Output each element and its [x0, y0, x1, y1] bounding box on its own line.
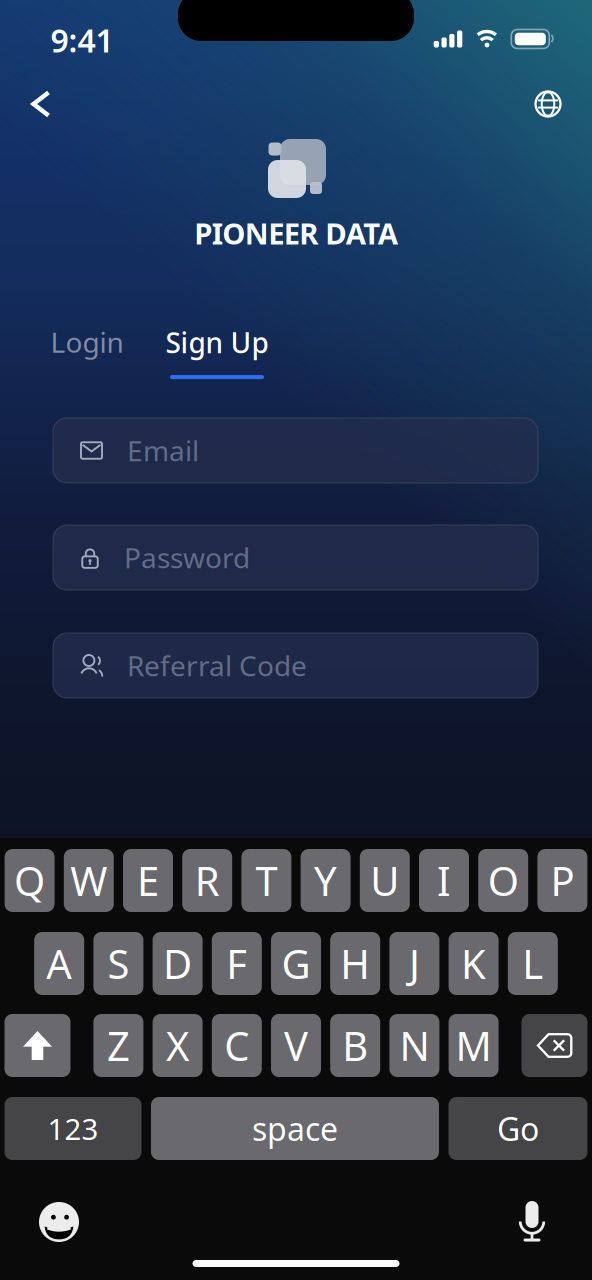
- staticText: 123: [47, 1109, 98, 1148]
- button[interactable]: U: [360, 849, 410, 912]
- staticText: Y: [314, 854, 337, 907]
- staticText: N: [399, 1019, 429, 1072]
- button[interactable]: Password: [53, 525, 538, 590]
- staticText: A: [46, 937, 72, 990]
- staticText: G: [281, 937, 310, 990]
- button[interactable]: Go: [448, 1097, 587, 1160]
- staticText: Password: [124, 539, 250, 576]
- staticText: X: [166, 1019, 189, 1072]
- staticText: 9:41: [50, 19, 113, 61]
- staticText: PIONEER DATA: [194, 213, 398, 252]
- button[interactable]: G: [271, 932, 321, 995]
- staticText: Login: [50, 323, 123, 361]
- button[interactable]: P: [537, 849, 587, 912]
- staticText: J: [409, 937, 420, 990]
- staticText: V: [284, 1019, 308, 1072]
- staticText: I: [437, 854, 451, 907]
- button[interactable]: H: [330, 932, 380, 995]
- staticText: U: [370, 854, 399, 907]
- staticText: T: [255, 854, 277, 907]
- button[interactable]: Language: [525, 81, 570, 126]
- staticText: R: [195, 854, 220, 907]
- staticText: M: [456, 1019, 492, 1072]
- button[interactable]: C: [212, 1014, 262, 1077]
- staticText: Email: [127, 432, 199, 469]
- button[interactable]: V: [271, 1014, 321, 1077]
- staticText: E: [137, 854, 159, 907]
- button[interactable]: Dictation: [519, 1202, 545, 1241]
- button[interactable]: L: [508, 932, 558, 995]
- staticText: B: [342, 1019, 368, 1072]
- button[interactable]: N: [389, 1014, 439, 1077]
- button[interactable]: A: [34, 932, 84, 995]
- staticText: Go: [497, 1107, 539, 1150]
- button[interactable]: Emoji: [39, 1202, 79, 1242]
- staticText: H: [340, 937, 370, 990]
- staticText: O: [488, 854, 519, 907]
- staticText: F: [226, 937, 247, 990]
- staticText: P: [550, 854, 574, 907]
- button[interactable]: Email: [53, 418, 538, 483]
- button[interactable]: Back: [19, 78, 62, 129]
- staticText: Z: [107, 1019, 130, 1072]
- button[interactable]: J: [389, 932, 439, 995]
- button[interactable]: T: [241, 849, 291, 912]
- staticText: Referral Code: [127, 647, 307, 684]
- button[interactable]: B: [330, 1014, 380, 1077]
- button[interactable]: S: [93, 932, 143, 995]
- staticText: S: [107, 937, 129, 990]
- button[interactable]: M: [449, 1014, 499, 1077]
- button[interactable]: Q: [5, 849, 55, 912]
- button[interactable]: Referral Code: [53, 633, 538, 698]
- button[interactable]: space: [151, 1097, 439, 1160]
- staticText: L: [522, 937, 543, 990]
- button[interactable]: Y: [301, 849, 351, 912]
- button[interactable]: F: [212, 932, 262, 995]
- button[interactable]: D: [153, 932, 203, 995]
- button[interactable]: R: [182, 849, 232, 912]
- button[interactable]: X: [153, 1014, 203, 1077]
- button[interactable]: Sign Up: [165, 324, 268, 379]
- staticText: D: [163, 937, 192, 990]
- staticText: C: [224, 1019, 249, 1072]
- button[interactable]: Shift: [4, 1014, 70, 1077]
- button[interactable]: Delete: [521, 1014, 587, 1077]
- staticText: K: [461, 937, 486, 990]
- button[interactable]: O: [478, 849, 528, 912]
- button[interactable]: E: [123, 849, 173, 912]
- button[interactable]: W: [64, 849, 114, 912]
- button[interactable]: Z: [93, 1014, 143, 1077]
- button[interactable]: I: [419, 849, 469, 912]
- button[interactable]: 123: [4, 1097, 141, 1160]
- button[interactable]: K: [449, 932, 499, 995]
- staticText: space: [252, 1107, 338, 1150]
- staticText: W: [70, 854, 107, 907]
- staticText: Q: [14, 854, 45, 907]
- button[interactable]: Login: [50, 317, 123, 367]
- staticText: Sign Up: [165, 324, 268, 361]
